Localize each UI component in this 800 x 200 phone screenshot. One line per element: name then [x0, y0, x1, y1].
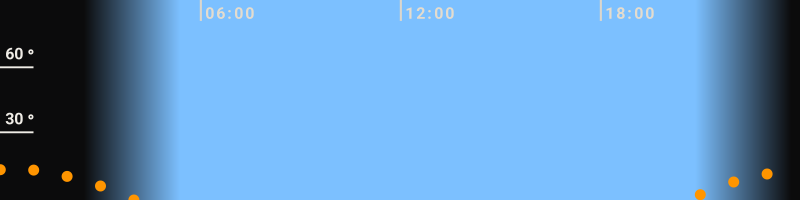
- staticText: 60°: [5, 44, 23, 63]
- staticText: 18:00: [605, 4, 654, 23]
- staticText: 30°: [5, 109, 23, 128]
- staticText: 12:00: [405, 4, 454, 23]
- staticText: 06:00: [205, 4, 254, 23]
